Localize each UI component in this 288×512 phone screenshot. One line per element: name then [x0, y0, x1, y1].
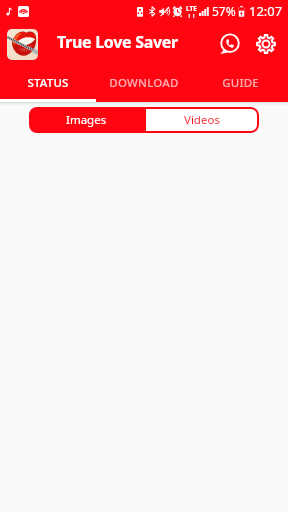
staticText: 12:07 — [249, 2, 283, 20]
staticText: STATUS — [27, 75, 69, 91]
staticText: DOWNLOAD — [109, 75, 179, 91]
staticText: GUIDE — [222, 75, 259, 91]
button[interactable]: Images — [29, 107, 144, 133]
button[interactable]: WhatsApp — [212, 26, 248, 62]
staticText: True Love Saver — [57, 31, 178, 53]
staticText: LTE — [186, 4, 197, 13]
button[interactable]: STATUS — [0, 66, 96, 102]
staticText: Images — [66, 112, 107, 128]
staticText: Videos — [184, 112, 220, 128]
staticText: 57% — [212, 3, 236, 19]
button[interactable]: DOWNLOAD — [96, 66, 192, 102]
button[interactable]: GUIDE — [192, 66, 288, 102]
button[interactable]: Settings — [248, 26, 284, 62]
button[interactable]: Videos — [144, 107, 259, 133]
